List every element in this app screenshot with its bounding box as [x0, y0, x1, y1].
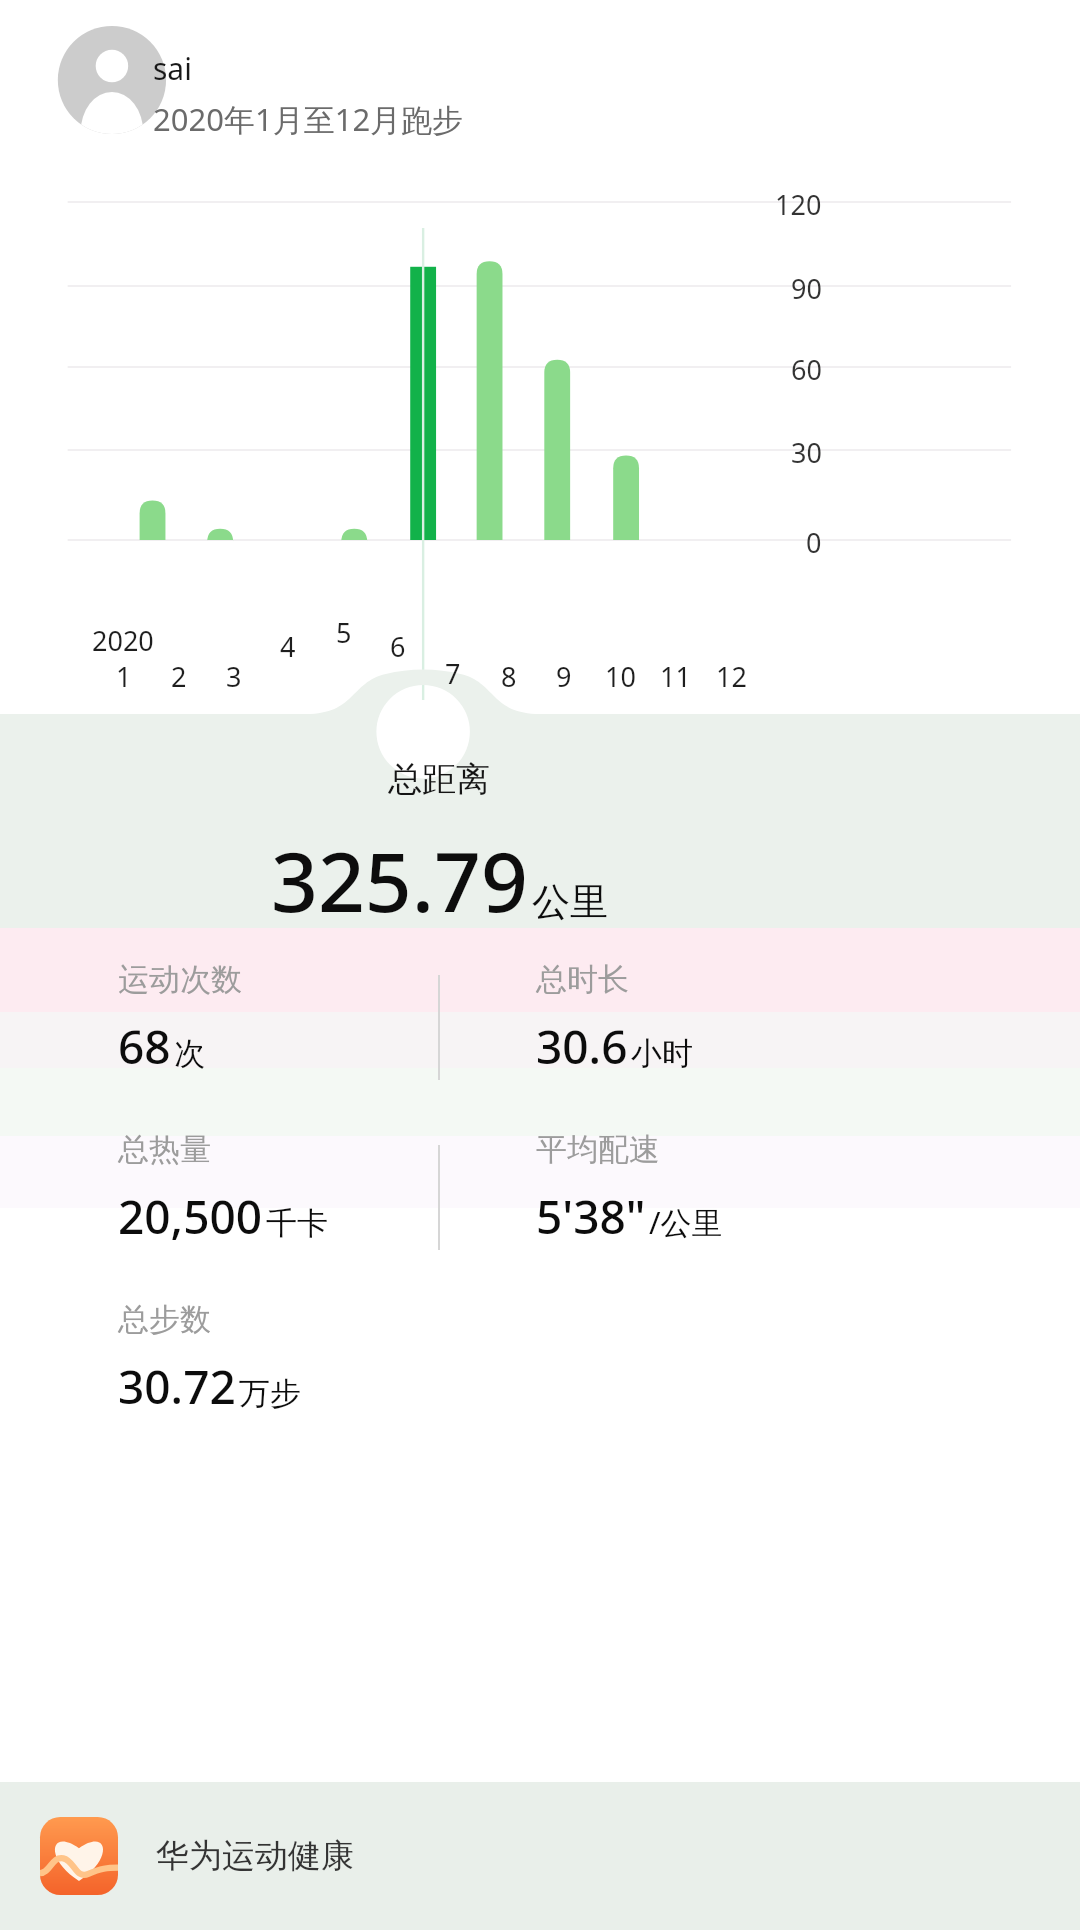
- staticText: 总时长: [536, 960, 629, 999]
- staticText: 华为运动健康: [156, 1835, 354, 1877]
- staticText: 30.72: [118, 1355, 236, 1418]
- staticText: 9: [556, 658, 572, 695]
- staticText: 2020: [92, 622, 154, 659]
- staticText: 总距离: [388, 758, 490, 801]
- staticText: 90: [791, 270, 822, 307]
- staticText: 平均配速: [536, 1130, 660, 1169]
- staticText: 30: [791, 434, 822, 471]
- staticText: 120: [775, 186, 822, 223]
- staticText: 5: [336, 614, 352, 651]
- staticText: 小时: [631, 1034, 693, 1073]
- button[interactable]: 总时长: [536, 960, 693, 1078]
- staticText: 公里: [532, 878, 608, 926]
- button[interactable]: 平均配速: [536, 1130, 723, 1248]
- staticText: 运动次数: [118, 960, 242, 999]
- button[interactable]: 总步数: [118, 1300, 301, 1418]
- staticText: 68: [118, 1015, 171, 1078]
- staticText: 8: [501, 658, 517, 695]
- staticText: 4: [280, 628, 296, 665]
- other: 华为运动健康: [40, 1817, 118, 1895]
- button[interactable]: 华为运动健康: [0, 1782, 878, 1930]
- staticText: 总步数: [118, 1300, 211, 1339]
- button[interactable]: 总热量: [118, 1130, 328, 1248]
- button[interactable]: 运动次数: [118, 960, 242, 1078]
- staticText: 总热量: [118, 1130, 211, 1169]
- staticText: 次: [174, 1034, 205, 1073]
- staticText: 0: [806, 524, 822, 561]
- staticText: 2020年1月至12月跑步: [153, 98, 464, 140]
- staticText: 10: [605, 658, 636, 695]
- staticText: 20,500: [118, 1185, 263, 1248]
- staticText: 万步: [239, 1374, 301, 1413]
- staticText: 325.79: [271, 824, 528, 936]
- staticText: 5'38": [536, 1185, 646, 1248]
- staticText: /公里: [649, 1201, 723, 1243]
- staticText: 30.6: [536, 1015, 628, 1078]
- staticText: 60: [791, 351, 822, 388]
- staticText: 7: [445, 655, 461, 692]
- staticText: 12: [716, 658, 747, 695]
- staticText: 2: [171, 658, 187, 695]
- staticText: 千卡: [266, 1204, 328, 1243]
- staticText: sai: [153, 48, 192, 89]
- staticText: 6: [390, 628, 406, 665]
- staticText: 11: [660, 658, 691, 695]
- staticText: 3: [226, 658, 242, 695]
- staticText: 1: [116, 658, 132, 695]
